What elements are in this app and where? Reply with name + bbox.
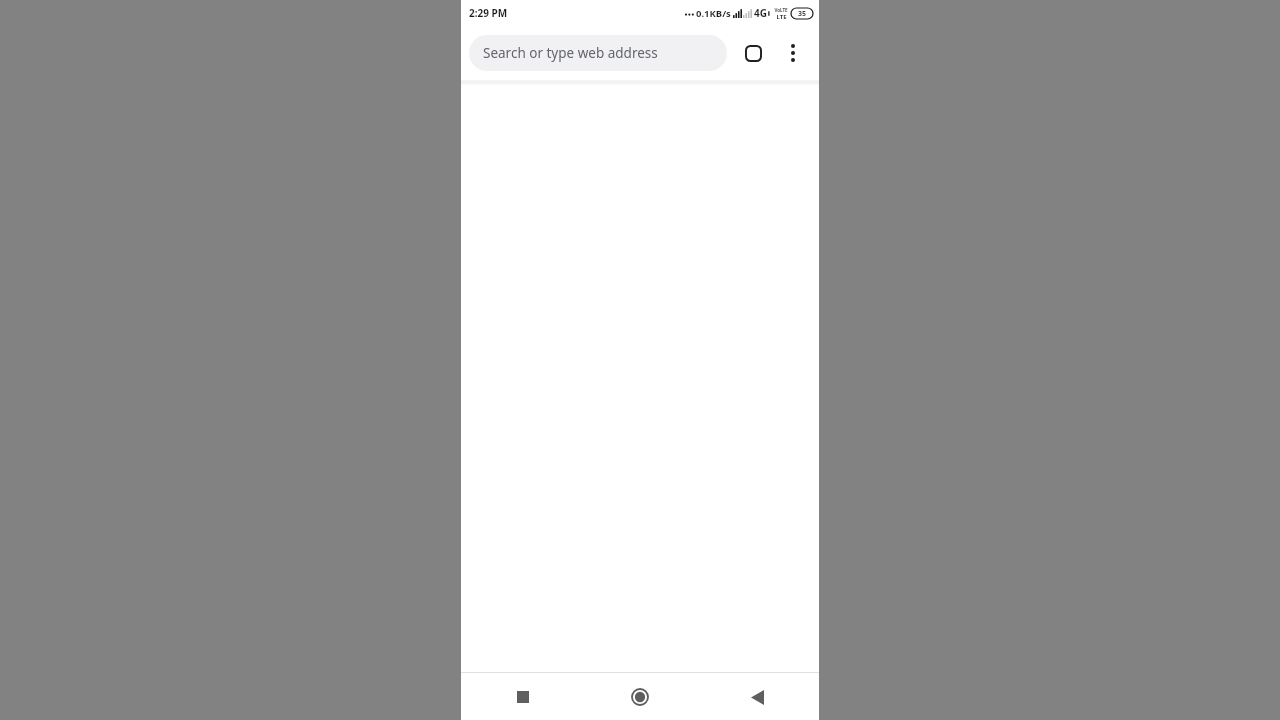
button[interactable]: Search or type web address [469, 35, 727, 71]
button[interactable]: Recent apps [501, 675, 545, 719]
staticText: VoLTE [774, 7, 788, 13]
button[interactable]: Home [618, 675, 662, 719]
staticText: 0.1KB/s [696, 7, 731, 20]
staticText: Search or type web address [483, 44, 658, 62]
staticText: 35 [798, 9, 807, 19]
staticText: 2:29 PM [469, 6, 508, 20]
staticText: 4G [754, 6, 767, 20]
button[interactable]: More options [773, 33, 813, 73]
button[interactable]: Back [735, 675, 779, 719]
button[interactable]: Tab switcher [733, 33, 773, 73]
staticText: LTE [776, 13, 787, 19]
